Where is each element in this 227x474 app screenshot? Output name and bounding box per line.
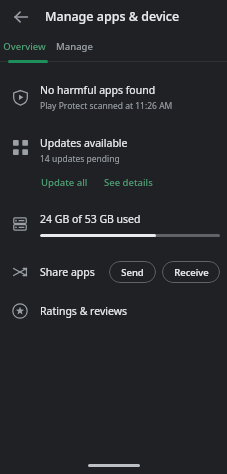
button[interactable]: Send [109,261,156,283]
staticText: Manage [56,40,93,53]
button[interactable]: See details [103,174,154,191]
staticText: Send [121,266,144,279]
button[interactable]: Overview [0,33,48,60]
staticText: 14 updates pending [40,153,120,165]
button[interactable]: Update all [40,174,89,191]
staticText: Overview [3,40,46,53]
button[interactable]: Manage [48,33,100,60]
staticText: Updates available [40,136,128,150]
button[interactable]: Receive [162,261,220,283]
button[interactable]: No harmful apps found [0,73,227,121]
staticText: Play Protect scanned at 11:26 AM [40,100,173,112]
staticText: 24 GB of 53 GB used [40,212,141,226]
staticText: Manage apps & device [45,8,180,25]
button[interactable]: Ratings & reviews [0,295,227,327]
staticText: Ratings & reviews [40,304,127,318]
staticText: No harmful apps found [40,83,156,97]
staticText: Update all [41,176,88,189]
staticText: Receive [174,266,209,279]
button[interactable]: Updates available [40,129,219,168]
button[interactable]: Back [7,3,35,31]
staticText: Share apps [40,265,95,279]
staticText: See details [104,176,153,189]
button[interactable]: 24 GB of 53 GB used [0,205,227,243]
